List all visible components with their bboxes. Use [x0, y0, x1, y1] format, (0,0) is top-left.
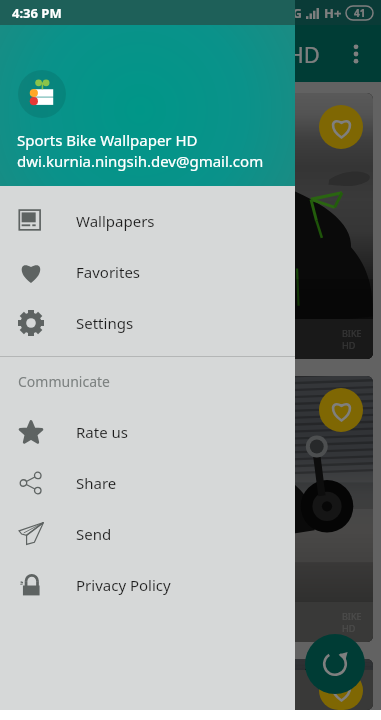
staticText: H+ — [324, 4, 342, 22]
staticText: Favorites — [76, 262, 141, 282]
staticText: Share — [76, 473, 117, 493]
staticText: BIKE HD — [342, 678, 362, 702]
staticText: dwi.kurnia.ningsih.dev@gmail.com — [17, 151, 264, 171]
staticText: Send — [76, 524, 112, 544]
button[interactable]: Privacy Policy — [0, 559, 295, 610]
staticText: 4G — [285, 4, 302, 22]
button[interactable]: SPORTS BIKE — [8, 93, 373, 359]
staticText: BIKE HD — [342, 327, 362, 351]
button[interactable]: More options — [333, 31, 379, 77]
button[interactable]: Favorite — [319, 388, 363, 432]
staticText: Sports Bike Wallpaper HD — [17, 130, 198, 150]
button[interactable]: Favorite — [319, 105, 363, 149]
staticText: Wallpapers — [76, 211, 155, 231]
staticText: SPORTS BIKE — [20, 325, 148, 354]
staticText: Rate us — [76, 422, 128, 442]
staticText: Communicate — [18, 372, 110, 391]
button[interactable]: Settings — [0, 297, 295, 348]
button[interactable]: Favorite — [319, 671, 363, 710]
button[interactable]: Send — [0, 508, 295, 559]
staticText: Sports Bike Wallpaper HD — [55, 39, 320, 69]
button[interactable]: Share — [0, 457, 295, 508]
button[interactable]: SPORTS BIKE — [8, 376, 373, 642]
button[interactable]: SPORTS BIKE — [8, 659, 373, 710]
staticText: 4:36 PM — [12, 4, 62, 22]
button[interactable]: Refresh — [305, 634, 365, 694]
staticText: Settings — [76, 313, 134, 333]
staticText: BIKE HD — [342, 610, 362, 634]
button[interactable]: Rate us — [0, 406, 295, 457]
button[interactable]: Wallpapers — [0, 195, 295, 246]
button[interactable]: Favorites — [0, 246, 295, 297]
staticText: Privacy Policy — [76, 575, 171, 595]
staticText: 41 — [354, 6, 366, 20]
